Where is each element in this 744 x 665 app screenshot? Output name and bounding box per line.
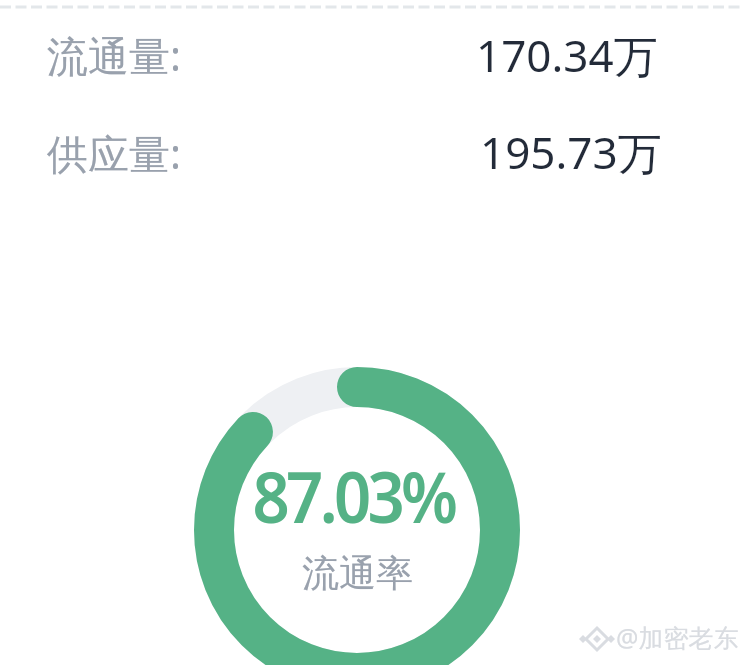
staticText: 流通率 (302, 550, 413, 597)
staticText: 170.34万 (476, 25, 658, 85)
staticText: 195.73万 (480, 122, 662, 182)
staticText: 供应量: (47, 125, 181, 181)
staticText: 流通量: (47, 27, 181, 83)
staticText: 87.03% (253, 448, 454, 543)
staticText: @加密老东 (616, 620, 739, 654)
